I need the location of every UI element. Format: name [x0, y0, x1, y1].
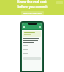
button[interactable] [23, 49, 41, 51]
staticText: Know the real cost [17, 0, 47, 4]
staticText: Take the loan test [23, 12, 42, 14]
button[interactable] [23, 45, 41, 47]
staticText: before you commit [17, 5, 48, 9]
button[interactable] [23, 31, 41, 37]
button[interactable]: Menu [23, 26, 25, 28]
button[interactable]: Take the loan test [21, 11, 44, 15]
button[interactable] [23, 53, 41, 55]
